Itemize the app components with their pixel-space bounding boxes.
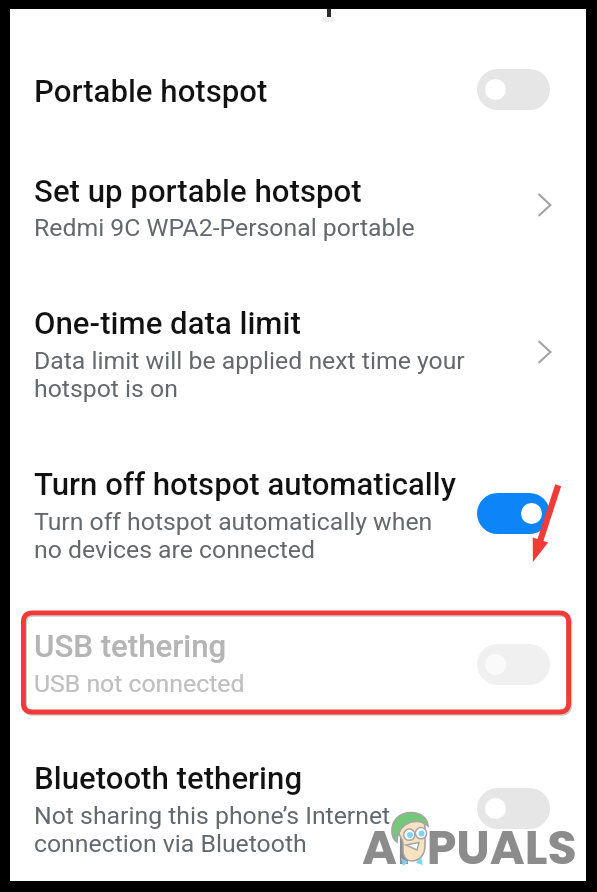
button[interactable]: USB tethering (0, 612, 597, 712)
staticText: hotspot is on (34, 374, 178, 403)
button[interactable]: Switch on (477, 493, 550, 534)
staticText: Turn off hotspot automatically (34, 466, 456, 503)
staticText: Not sharing this phone’s Internet (34, 801, 391, 830)
staticText: Portable hotspot (34, 73, 268, 110)
button[interactable]: Turn off hotspot automatically (0, 450, 597, 580)
staticText: connection via Bluetooth (34, 829, 307, 858)
staticText: no devices are connected (34, 535, 315, 564)
button[interactable]: Set up portable hotspot (0, 155, 597, 259)
staticText: USB not connected (34, 669, 245, 698)
staticText: Redmi 9C WPA2-Personal portable (34, 213, 415, 242)
button[interactable]: Open (533, 334, 569, 370)
staticText: Set up portable hotspot (34, 173, 362, 210)
staticText: APPUALS (362, 814, 577, 880)
staticText: Bluetooth tethering (34, 760, 303, 797)
button[interactable]: Open (533, 187, 569, 223)
staticText: Data limit will be applied next time you… (34, 346, 465, 375)
button[interactable]: Switch off (477, 644, 550, 685)
button[interactable]: Switch off (477, 69, 550, 110)
button[interactable]: One-time data limit (0, 288, 597, 418)
staticText: USB tethering (34, 628, 227, 665)
button[interactable]: Switch off (477, 788, 550, 829)
staticText: One-time data limit (34, 305, 301, 342)
staticText: Turn off hotspot automatically when (34, 507, 433, 536)
button[interactable]: Bluetooth tethering (0, 744, 597, 874)
button[interactable]: Portable hotspot (0, 55, 597, 131)
